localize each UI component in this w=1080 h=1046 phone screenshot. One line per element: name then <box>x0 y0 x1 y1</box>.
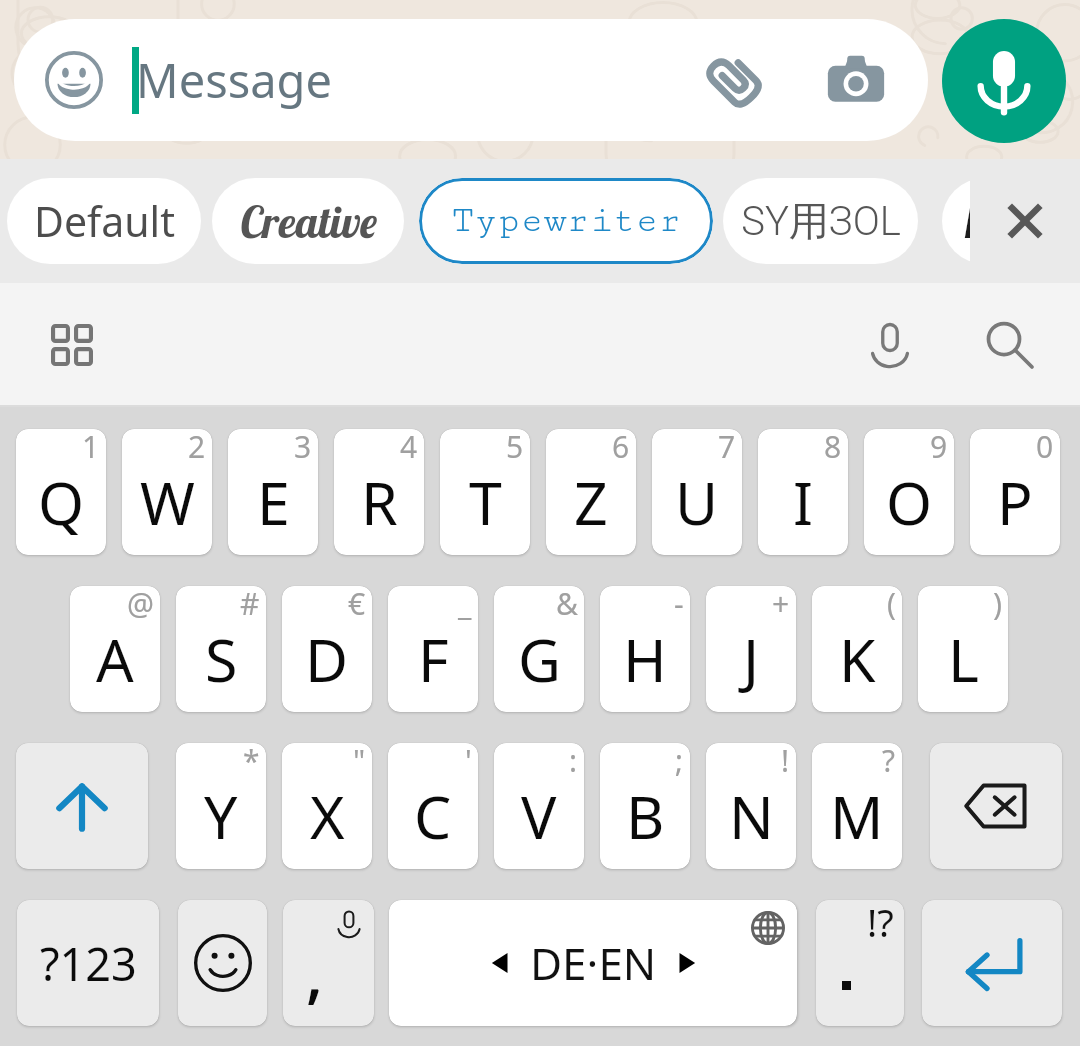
staticText: B <box>626 776 665 856</box>
button[interactable]: 3 <box>228 429 318 555</box>
staticText: Creative <box>239 194 378 249</box>
button[interactable]: Typewriter <box>419 178 713 264</box>
button[interactable]: Close font styles <box>970 159 1080 283</box>
button[interactable]: ; <box>600 743 690 869</box>
button[interactable]: Attach <box>686 32 782 128</box>
staticText: 6 <box>612 429 630 467</box>
button[interactable]: + <box>706 586 796 712</box>
staticText: DE·EN <box>530 933 657 993</box>
button[interactable]: & <box>494 586 584 712</box>
button[interactable]: Period <box>816 900 904 1026</box>
button[interactable]: ) <box>918 586 1008 712</box>
button[interactable]: 6 <box>546 429 636 555</box>
button[interactable]: Bold <box>942 178 1080 264</box>
staticText: * <box>243 743 260 781</box>
staticText: R <box>361 462 398 542</box>
staticText: & <box>556 586 578 624</box>
button[interactable]: Camera <box>808 32 904 128</box>
staticText: L <box>948 619 979 699</box>
staticText: Z <box>574 462 608 542</box>
button[interactable]: : <box>494 743 584 869</box>
staticText: Y <box>204 776 238 856</box>
staticText: K <box>839 619 876 699</box>
staticText: # <box>240 586 260 624</box>
staticText: !? <box>867 900 894 948</box>
staticText: 3 <box>294 429 312 467</box>
button[interactable]: * <box>176 743 266 869</box>
button[interactable]: Comma <box>283 900 374 1026</box>
button[interactable]: SY用ЗOL <box>723 178 918 264</box>
button[interactable]: Emoji <box>19 25 129 135</box>
staticText: S <box>205 619 238 699</box>
staticText: 0 <box>1036 429 1054 467</box>
staticText: SY用ЗOL <box>741 196 901 246</box>
staticText: Bold <box>964 193 1059 249</box>
staticText: D <box>305 619 349 699</box>
button[interactable]: 5 <box>440 429 530 555</box>
button[interactable]: € <box>282 586 372 712</box>
staticText: ; <box>675 743 684 781</box>
staticText: Q <box>38 462 85 542</box>
button[interactable]: Voice input <box>842 297 938 393</box>
staticText: , <box>307 937 323 1013</box>
staticText: 2 <box>188 429 206 467</box>
button[interactable]: 7 <box>652 429 742 555</box>
button[interactable]: ! <box>706 743 796 869</box>
staticText: 7 <box>718 429 736 467</box>
staticText: ) <box>993 586 1002 624</box>
staticText: G <box>518 619 561 699</box>
button[interactable]: 8 <box>758 429 848 555</box>
button[interactable]: 4 <box>334 429 424 555</box>
staticText: I <box>793 462 814 542</box>
button[interactable]: @ <box>70 586 160 712</box>
button[interactable]: # <box>176 586 266 712</box>
button[interactable]: ' <box>388 743 478 869</box>
staticText: 8 <box>824 429 842 467</box>
button[interactable]: Keyboard layouts <box>24 297 120 393</box>
staticText: ( <box>887 586 896 624</box>
staticText: 1 <box>82 429 100 467</box>
button[interactable]: Creative <box>212 178 404 264</box>
button[interactable]: Shift <box>16 743 148 869</box>
staticText: P <box>997 462 1033 542</box>
staticText: ! <box>781 743 790 781</box>
button[interactable]: - <box>600 586 690 712</box>
staticText: W <box>140 462 195 542</box>
staticText: € <box>348 586 366 624</box>
staticText: 4 <box>400 429 418 467</box>
staticText: ? <box>882 743 896 781</box>
button[interactable]: " <box>282 743 372 869</box>
staticText: - <box>674 586 684 624</box>
button[interactable]: ? <box>812 743 902 869</box>
staticText: Default <box>34 193 175 249</box>
staticText: 5 <box>506 429 524 467</box>
button[interactable]: Emoji <box>178 900 267 1026</box>
staticText: E <box>257 462 290 542</box>
button[interactable]: Voice message <box>942 19 1066 143</box>
button[interactable]: _ <box>388 586 478 712</box>
button[interactable]: Emoji <box>14 19 928 141</box>
staticText: H <box>623 619 667 699</box>
staticText: T <box>469 462 502 542</box>
staticText: ' <box>465 743 472 781</box>
staticText: F <box>418 619 449 699</box>
button[interactable]: Default <box>7 178 201 264</box>
button[interactable]: 9 <box>864 429 954 555</box>
staticText: V <box>521 776 557 856</box>
button[interactable]: 2 <box>122 429 212 555</box>
staticText: : <box>569 743 578 781</box>
staticText: Typewriter <box>451 200 682 242</box>
staticText: M <box>830 776 884 856</box>
button[interactable]: Space <box>389 900 797 1026</box>
staticText: C <box>414 776 452 856</box>
button[interactable]: Enter <box>922 900 1062 1026</box>
button[interactable]: Backspace <box>930 743 1062 869</box>
button[interactable]: ?123 <box>17 900 159 1026</box>
button[interactable]: 0 <box>970 429 1060 555</box>
button[interactable]: 1 <box>16 429 106 555</box>
staticText: @ <box>127 586 154 624</box>
staticText: U <box>675 462 719 542</box>
button[interactable]: ( <box>812 586 902 712</box>
staticText: ?123 <box>40 933 137 994</box>
button[interactable]: Search <box>962 297 1058 393</box>
